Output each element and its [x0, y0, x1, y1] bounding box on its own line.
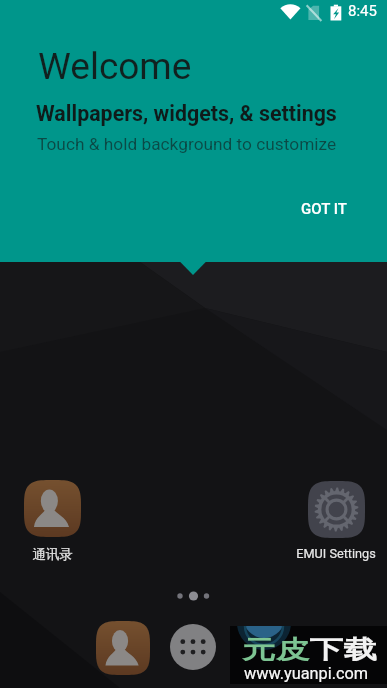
button[interactable]: Contacts — [96, 621, 150, 675]
button[interactable]: EMUI Settings — [308, 481, 365, 538]
button[interactable]: All apps — [170, 624, 216, 670]
staticText: 下载 — [310, 634, 377, 665]
staticText: 8:45 — [348, 2, 377, 20]
staticText: 元皮 — [242, 634, 310, 665]
button[interactable]: GOT IT — [285, 190, 363, 228]
staticText: 通讯录 — [32, 546, 73, 563]
staticText: Touch & hold background to customize — [37, 134, 337, 154]
staticText: Wallpapers, widgets, & settings — [36, 101, 337, 126]
staticText: EMUI Settings — [296, 546, 376, 561]
button[interactable]: 通讯录 — [24, 480, 81, 537]
staticText: www.yuanpi.com — [244, 664, 369, 683]
staticText: Welcome — [38, 45, 192, 88]
staticText: GOT IT — [301, 200, 347, 218]
